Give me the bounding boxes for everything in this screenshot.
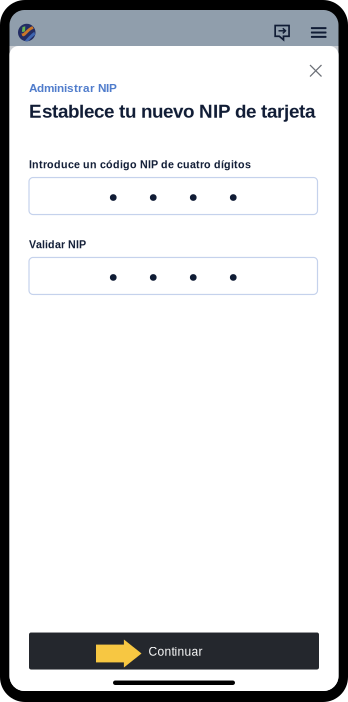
staticText: Validar NIP [29,238,86,250]
staticText: Continuar [148,645,202,658]
staticText: Administrar NIP [29,81,117,95]
button[interactable]: Menú [311,27,326,38]
button[interactable]: Cerrar [305,60,326,81]
staticText: Establece tu nuevo NIP de tarjeta [29,101,315,122]
staticText: Introduce un código NIP de cuatro dígito… [29,159,251,170]
button[interactable]: Mensajes [274,25,290,40]
button[interactable]: Continuar [29,632,319,669]
